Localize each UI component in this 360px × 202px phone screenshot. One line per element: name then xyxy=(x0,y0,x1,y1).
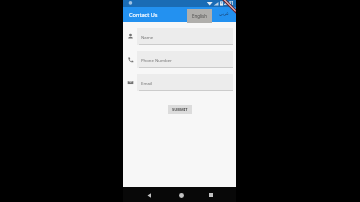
staticText: Phone Number xyxy=(141,57,172,63)
button[interactable]: Name xyxy=(137,28,233,45)
button[interactable]: عربي xyxy=(212,7,236,22)
button[interactable]: English xyxy=(187,9,212,23)
button[interactable]: Email xyxy=(137,74,233,91)
staticText: Contact Us xyxy=(129,11,158,19)
staticText: 2:41 xyxy=(224,0,234,7)
button[interactable]: Back xyxy=(141,188,155,202)
button[interactable]: Phone Number xyxy=(137,51,233,68)
staticText: English xyxy=(192,13,207,19)
staticText: Name xyxy=(141,34,154,40)
staticText: SUBMIT xyxy=(172,107,188,112)
button[interactable]: Recent apps xyxy=(204,188,218,202)
button[interactable]: SUBMIT xyxy=(168,105,192,114)
staticText: عربي xyxy=(219,11,229,16)
staticText: Email xyxy=(141,80,153,86)
button[interactable]: Home xyxy=(173,188,187,202)
